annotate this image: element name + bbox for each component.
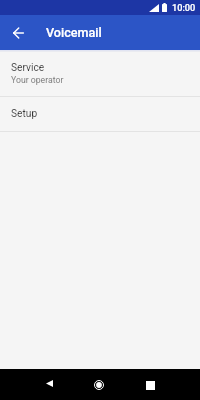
button[interactable]: Setup <box>0 97 200 131</box>
staticText: 10:00 <box>172 2 196 13</box>
button[interactable]: Back <box>35 369 64 398</box>
staticText: Setup <box>11 108 38 120</box>
button[interactable]: Navigate up <box>7 22 29 44</box>
button[interactable]: Recent apps <box>135 370 165 400</box>
button[interactable]: Service <box>0 52 200 96</box>
staticText: Service <box>11 62 45 74</box>
staticText: Your operator <box>11 75 64 85</box>
staticText: Voicemail <box>46 25 102 40</box>
button[interactable]: Home <box>84 370 114 400</box>
